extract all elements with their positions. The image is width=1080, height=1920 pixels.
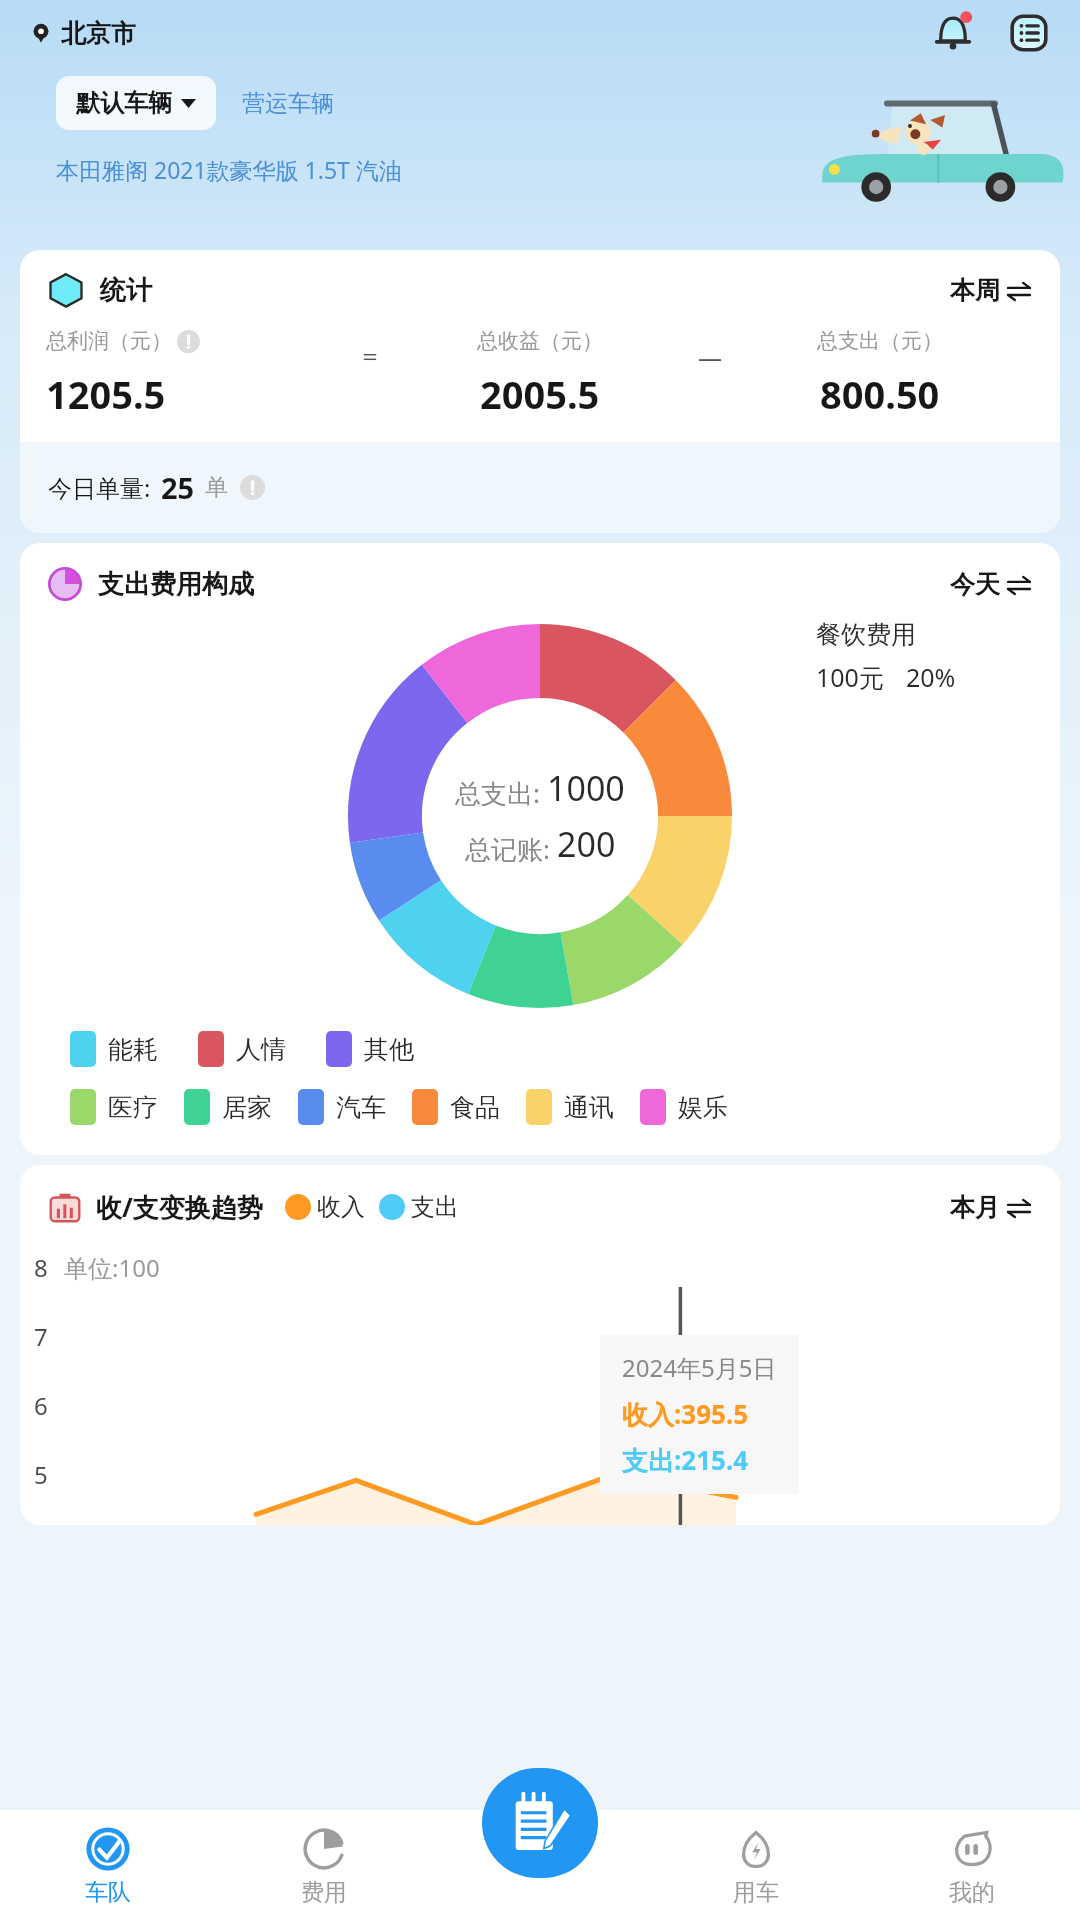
staticText: 收入: [317, 1192, 365, 1222]
staticText: 2005.5: [480, 368, 600, 420]
staticText: 总支出（元）: [817, 328, 943, 354]
staticText: 能耗: [108, 1034, 158, 1065]
staticText: 费用: [301, 1878, 347, 1907]
button[interactable]: 本周: [950, 275, 1032, 306]
staticText: 统计: [100, 274, 152, 307]
staticText: 8: [34, 1251, 48, 1284]
staticText: 默认车辆: [76, 88, 172, 118]
staticText: 人情: [236, 1034, 286, 1065]
staticText: 餐饮费用: [816, 619, 916, 650]
staticText: 总支出:: [455, 775, 547, 811]
staticText: 6: [34, 1389, 48, 1422]
button[interactable]: 能耗: [70, 1031, 158, 1067]
button[interactable]: 汽车: [298, 1089, 386, 1125]
staticText: 支出: [411, 1192, 459, 1222]
button[interactable]: 营运车辆: [242, 89, 334, 118]
staticText: 总收益（元）: [477, 328, 603, 354]
button[interactable]: 通讯: [526, 1089, 614, 1125]
button[interactable]: 本月: [950, 1192, 1032, 1223]
button[interactable]: 居家: [184, 1089, 272, 1125]
staticText: 收入:395.5: [622, 1396, 749, 1432]
button[interactable]: Notifications: [928, 8, 978, 58]
staticText: 食品: [450, 1092, 500, 1123]
staticText: 支出:215.4: [622, 1442, 749, 1478]
staticText: 20%: [906, 660, 956, 694]
staticText: —: [698, 340, 722, 373]
staticText: 其他: [364, 1034, 414, 1065]
staticText: 本月: [950, 1192, 1000, 1223]
staticText: 北京市: [61, 18, 136, 49]
button[interactable]: 娱乐: [640, 1089, 728, 1125]
staticText: 今日单量:: [48, 471, 151, 504]
staticText: ＝: [358, 341, 382, 371]
staticText: 5: [34, 1458, 48, 1491]
button[interactable]: 统计: [20, 250, 1060, 533]
button[interactable]: 医疗: [70, 1089, 158, 1125]
staticText: 用车: [733, 1878, 779, 1907]
staticText: 汽车: [336, 1092, 386, 1123]
staticText: 7: [34, 1320, 48, 1353]
staticText: 800.50: [820, 368, 940, 420]
staticText: 总记账:: [465, 831, 557, 867]
button[interactable]: 记账 Add record: [482, 1768, 598, 1878]
button[interactable]: 食品: [412, 1089, 500, 1125]
button[interactable]: 人情: [198, 1031, 286, 1067]
staticText: 我的: [949, 1878, 995, 1907]
button[interactable]: List: [1004, 8, 1054, 58]
staticText: 总利润（元）: [46, 328, 172, 354]
staticText: 居家: [222, 1092, 272, 1123]
button[interactable]: 今天: [950, 569, 1032, 600]
button[interactable]: 默认车辆: [56, 76, 216, 130]
button[interactable]: 其他: [326, 1031, 414, 1067]
button[interactable]: 收/支变换趋势: [20, 1165, 1060, 1525]
button[interactable]: 我的: [864, 1810, 1080, 1920]
staticText: 娱乐: [678, 1092, 728, 1123]
button[interactable]: 用车: [648, 1810, 864, 1920]
button[interactable]: 支出费用构成: [20, 543, 1060, 1155]
staticText: 收/支变换趋势: [96, 1189, 263, 1225]
staticText: 今天: [950, 569, 1000, 600]
staticText: 25: [161, 468, 195, 507]
staticText: 200: [557, 821, 616, 867]
staticText: 1000: [547, 765, 625, 811]
button[interactable]: 费用: [216, 1810, 432, 1920]
staticText: 单位:100: [64, 1251, 160, 1284]
staticText: 100元: [816, 660, 884, 694]
staticText: 医疗: [108, 1092, 158, 1123]
staticText: 本周: [950, 275, 1000, 306]
staticText: 单: [205, 473, 228, 502]
staticText: 1205.5: [46, 368, 166, 420]
staticText: 本田雅阁 2021款豪华版 1.5T 汽油: [56, 154, 402, 185]
staticText: 车队: [85, 1878, 131, 1907]
staticText: 支出费用构成: [98, 568, 254, 601]
staticText: 通讯: [564, 1092, 614, 1123]
button[interactable]: 车队: [0, 1810, 216, 1920]
staticText: 2024年5月5日: [622, 1351, 777, 1384]
